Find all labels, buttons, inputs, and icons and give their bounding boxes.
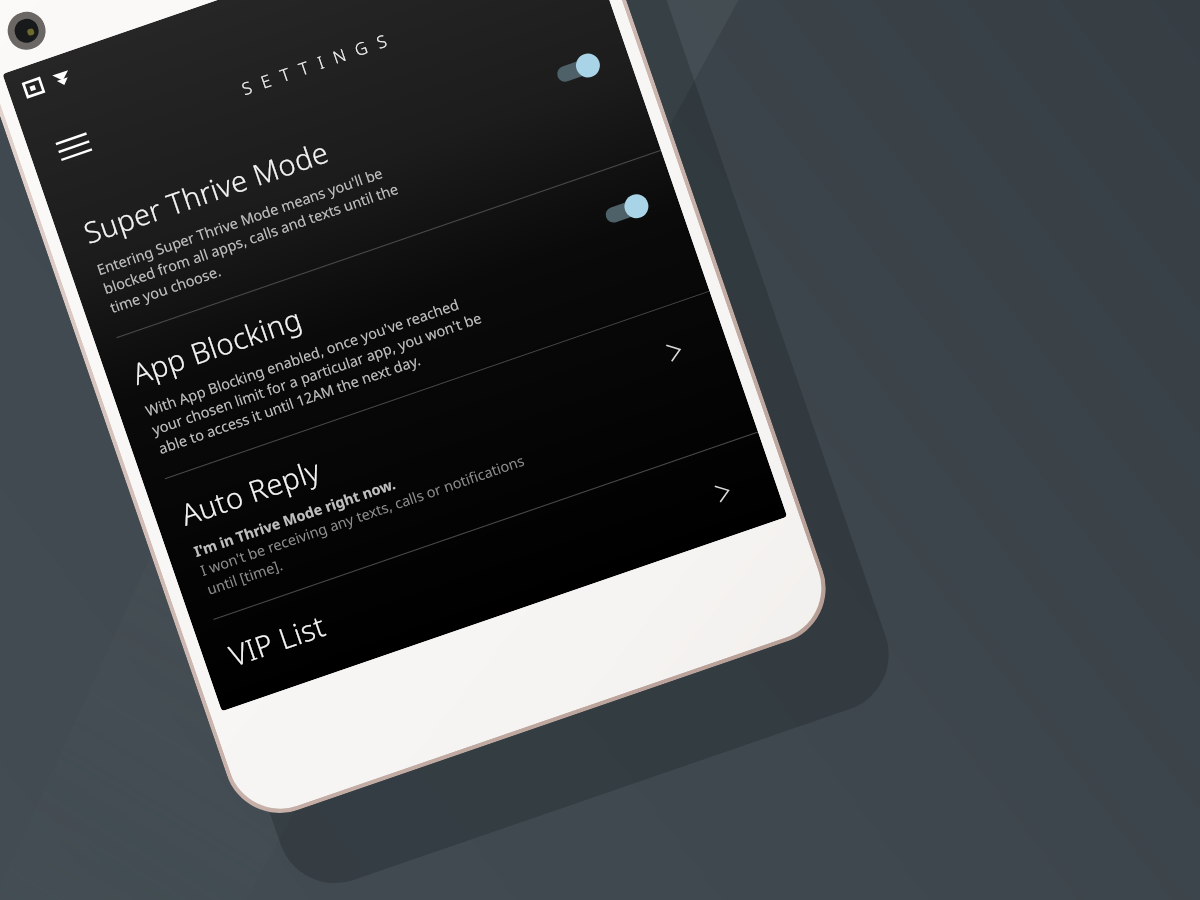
button[interactable]: Open VIP List: [687, 464, 758, 520]
staticText: I won't be receiving any texts, calls or…: [198, 450, 534, 599]
button[interactable]: Open navigation menu: [41, 114, 107, 180]
button[interactable]: Open Auto Reply: [639, 323, 710, 379]
staticText: App Blocking: [127, 298, 307, 393]
staticText: S E T T I N G S: [239, 28, 393, 100]
button[interactable]: Super Thrive Mode: [47, 10, 661, 344]
staticText: Entering Super Thrive Mode means you'll …: [94, 159, 408, 317]
button[interactable]: Toggle Super Thrive Mode: [542, 42, 613, 98]
staticText: Super Thrive Mode: [78, 132, 333, 252]
button[interactable]: App Blocking: [96, 151, 709, 485]
button[interactable]: Auto Reply: [144, 292, 758, 626]
staticText: While in Thrive Mode, you are blocking c…: [240, 572, 563, 684]
button[interactable]: VIP List: [193, 432, 787, 711]
button[interactable]: Toggle App Blocking: [590, 182, 661, 239]
staticText: With App Blocking enabled, once you've r…: [142, 288, 491, 458]
staticText: I'm in Thrive Mode right now.: [191, 473, 398, 561]
staticText: Auto Reply: [175, 449, 325, 534]
staticText: VIP List: [224, 605, 330, 674]
